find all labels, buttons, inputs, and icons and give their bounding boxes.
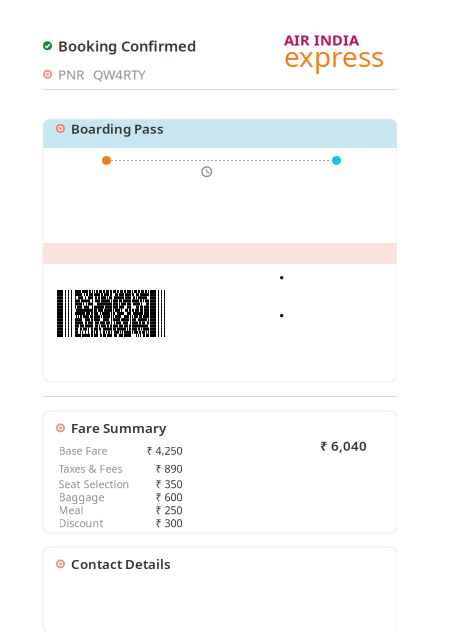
staticText: Discount [58, 516, 103, 530]
button[interactable]: Air India Express [284, 0, 384, 89]
staticText: Seat Selection [58, 477, 129, 491]
staticText: ₹ 4,250 [146, 444, 182, 458]
button[interactable]: Contact Details [43, 547, 397, 632]
staticText: ₹ 350 [155, 477, 182, 491]
staticText: AIR INDIA [284, 30, 359, 49]
staticText: ₹ 250 [155, 503, 182, 517]
staticText: Base Fare [58, 444, 107, 458]
staticText: Fare Summary [71, 419, 166, 437]
button[interactable]: Fare Summary [43, 411, 397, 533]
staticText: ₹ 6,040 [320, 437, 367, 454]
staticText: Boarding Pass [71, 120, 164, 137]
staticText: ₹ 300 [155, 516, 182, 530]
staticText: Booking Confirmed [58, 36, 196, 55]
staticText: ₹ 890 [155, 462, 182, 476]
button[interactable]: Boarding Pass [43, 119, 397, 382]
staticText: express [284, 37, 384, 75]
staticText: Contact Details [71, 555, 171, 573]
staticText: Taxes & Fees [58, 462, 122, 476]
button[interactable]: PNR QW4RTY [43, 65, 146, 83]
staticText: Baggage [58, 490, 104, 504]
staticText: Meal [58, 503, 83, 517]
staticText: ₹ 600 [155, 490, 182, 504]
staticText: PNR QW4RTY [58, 65, 146, 83]
